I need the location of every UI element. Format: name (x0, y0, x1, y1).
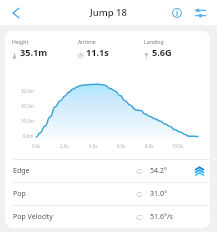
staticText: 10.0s (172, 143, 183, 149)
staticText: 10.0m (21, 118, 34, 124)
staticText: Height (12, 38, 29, 45)
button[interactable]: Edge (5, 160, 210, 182)
staticText: 6.0s (117, 143, 126, 149)
staticText: Landing (144, 38, 164, 45)
staticText: 30.0m (21, 88, 34, 94)
staticText: 5.6G (152, 46, 172, 59)
button[interactable]: Info (167, 3, 187, 23)
staticText: 35.1m (20, 46, 48, 59)
button[interactable]: Back (5, 2, 27, 24)
staticText: Pop Velocity (13, 212, 53, 222)
staticText: 4.0s (89, 143, 98, 149)
staticText: 51.6°/s (150, 212, 173, 222)
staticText: 31.0° (150, 189, 167, 199)
staticText: 0.0m (23, 133, 34, 139)
button[interactable]: Pop (5, 183, 210, 205)
button[interactable]: Pop Velocity (5, 206, 210, 228)
staticText: 0.0s (32, 143, 41, 149)
staticText: 11.1s (86, 46, 109, 59)
staticText: Pop (13, 189, 26, 199)
staticText: 20.0m (21, 103, 34, 109)
staticText: 8.0s (145, 143, 154, 149)
staticText: 54.2° (150, 166, 167, 176)
staticText: 2.0s (60, 143, 69, 149)
staticText: Edge (13, 166, 30, 176)
button[interactable]: Settings (190, 2, 211, 23)
staticText: Airtime (78, 38, 96, 45)
staticText: Jump 18 (90, 6, 127, 19)
